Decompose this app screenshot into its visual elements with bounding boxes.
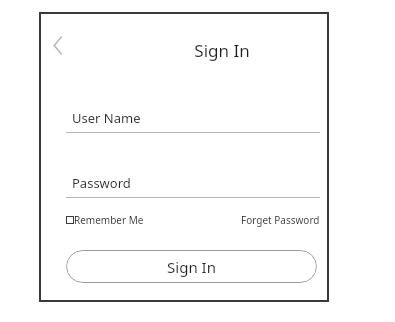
staticText: Sign In [194, 39, 250, 62]
staticText: Forget Password [241, 213, 320, 227]
staticText: User Name [72, 109, 141, 127]
button[interactable]: Forget Password [241, 213, 320, 227]
staticText: Remember Me [74, 213, 144, 227]
button[interactable]: User Name [66, 107, 320, 133]
button[interactable]: Remember Me [66, 213, 144, 227]
button[interactable]: Back [43, 29, 73, 61]
staticText: Password [72, 174, 131, 192]
button[interactable]: Sign In [66, 250, 317, 283]
button[interactable]: Password [66, 172, 320, 198]
staticText: Sign In [167, 257, 216, 277]
